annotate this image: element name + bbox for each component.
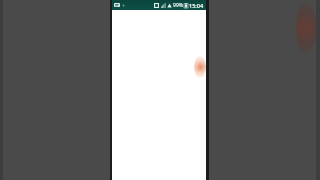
staticText: 15:04	[189, 2, 204, 9]
staticText: 99%	[173, 2, 183, 9]
other: Notification	[114, 2, 120, 8]
button[interactable]	[112, 10, 206, 180]
